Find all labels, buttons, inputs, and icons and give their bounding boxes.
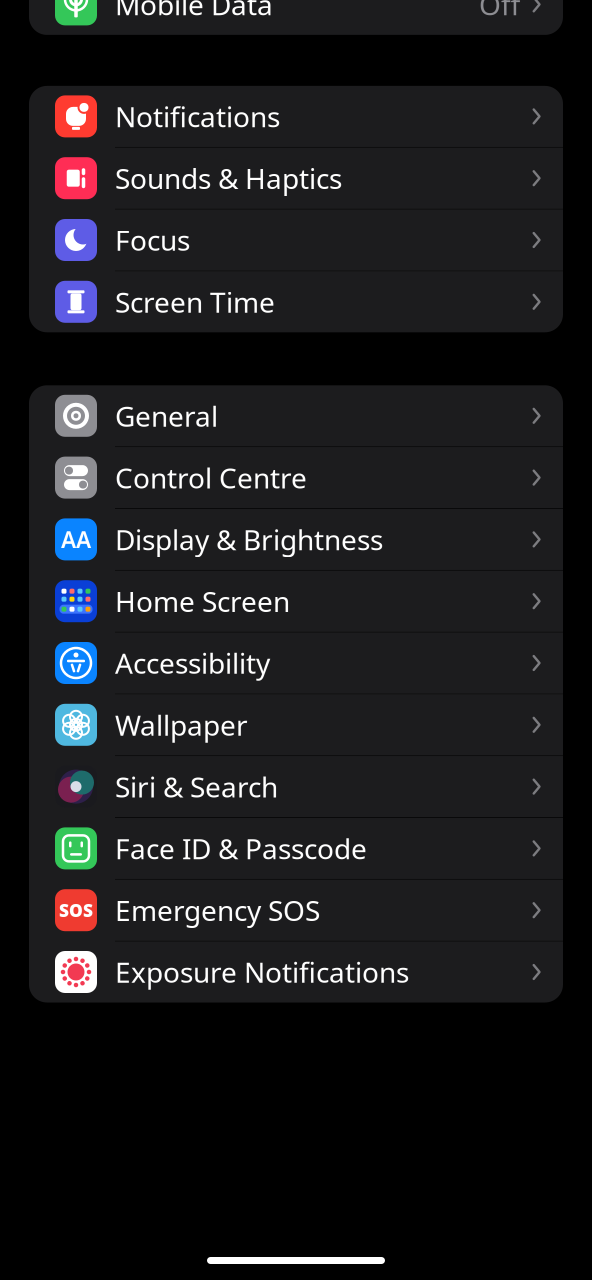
staticText: Sounds & Haptics <box>115 160 342 197</box>
button[interactable]: Accessibility <box>29 632 563 693</box>
staticText: SOS <box>59 899 93 922</box>
button[interactable]: Notifications <box>29 86 563 147</box>
button[interactable]: Wallpaper <box>29 694 563 755</box>
staticText: Home Screen <box>115 583 290 620</box>
staticText: Exposure Notifications <box>115 953 409 991</box>
staticText: AA <box>61 524 91 554</box>
staticText: Mobile Data <box>115 0 273 23</box>
staticText: Accessibility <box>115 644 270 682</box>
staticText: Siri & Search <box>115 768 278 805</box>
button[interactable]: Face ID & Passcode <box>29 818 563 879</box>
staticText: General <box>115 397 218 434</box>
button[interactable]: Control Centre <box>29 447 563 508</box>
staticText: Screen Time <box>115 283 275 320</box>
button[interactable]: Home Screen <box>29 571 563 632</box>
button[interactable]: General <box>29 385 563 446</box>
button[interactable]: Mobile Data <box>29 0 563 35</box>
button[interactable]: SOS <box>29 880 563 941</box>
button[interactable]: Sounds & Haptics <box>29 148 563 209</box>
button[interactable]: Screen Time <box>29 271 563 332</box>
staticText: Control Centre <box>115 459 307 496</box>
button[interactable]: Focus <box>29 209 563 270</box>
button[interactable]: Siri & Search <box>29 756 563 817</box>
staticText: Display & Brightness <box>115 521 383 558</box>
staticText: Face ID & Passcode <box>115 830 367 867</box>
staticText: Focus <box>115 221 190 259</box>
staticText: Emergency SOS <box>115 892 320 929</box>
staticText: Wallpaper <box>115 706 248 743</box>
button[interactable]: AA <box>29 509 563 570</box>
staticText: Off <box>479 0 520 23</box>
staticText: Notifications <box>115 98 280 135</box>
button[interactable]: Exposure Notifications <box>29 941 563 1002</box>
